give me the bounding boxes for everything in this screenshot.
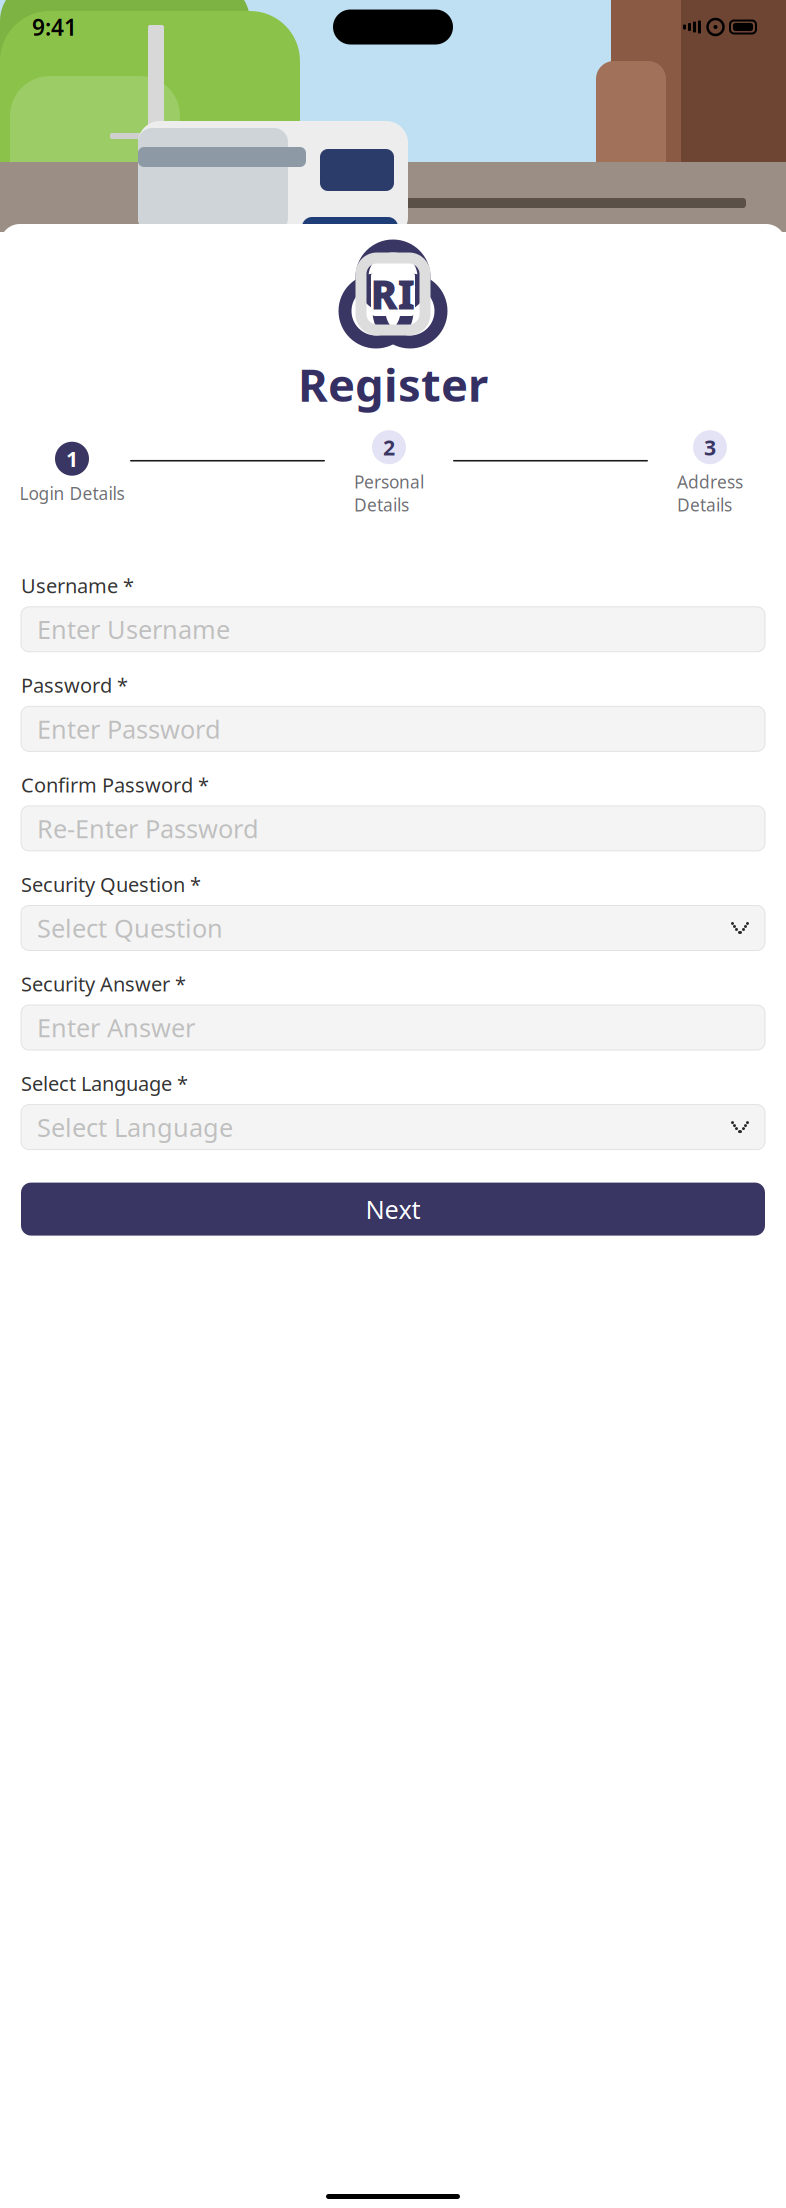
staticText: Confirm Password *: [21, 771, 209, 798]
staticText: Select Language *: [21, 1070, 188, 1097]
staticText: 1: [66, 444, 78, 473]
button[interactable]: Next: [21, 1183, 765, 1236]
staticText: 3: [704, 433, 716, 461]
button[interactable]: Select Question: [21, 905, 765, 950]
button[interactable]: Select Language: [21, 1105, 765, 1150]
staticText: 9:41: [32, 12, 77, 42]
staticText: 2: [383, 433, 395, 461]
staticText: Security Answer *: [21, 970, 186, 997]
staticText: Personal Details: [354, 470, 424, 516]
staticText: Password *: [21, 672, 128, 698]
staticText: Next: [365, 1192, 420, 1226]
staticText: Address Details: [677, 470, 743, 516]
button[interactable]: Enter Username: [21, 607, 765, 652]
staticText: Select Language: [37, 1110, 233, 1144]
staticText: Re-Enter Password: [37, 812, 259, 845]
button[interactable]: Enter Password: [21, 706, 765, 751]
staticText: Select Question: [37, 911, 223, 945]
staticText: Login Details: [19, 482, 124, 505]
button[interactable]: Enter Answer: [21, 1005, 765, 1050]
button[interactable]: Re-Enter Password: [21, 806, 765, 851]
staticText: Enter Answer: [37, 1011, 195, 1044]
staticText: Register: [298, 354, 488, 414]
staticText: Security Question *: [21, 871, 201, 897]
staticText: Enter Username: [37, 612, 230, 646]
staticText: Enter Password: [37, 712, 221, 746]
staticText: Username *: [21, 572, 134, 599]
staticText: RI: [370, 267, 415, 320]
